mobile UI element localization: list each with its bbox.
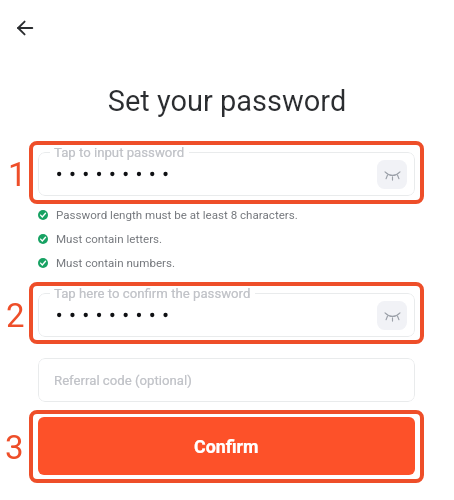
button[interactable]: Referral code (optional) [38, 358, 415, 402]
staticText: Password length must be at least 8 chara… [56, 208, 298, 222]
staticText: Tap here to confirm the password [54, 286, 251, 301]
button[interactable]: Must contain numbers. [38, 254, 158, 272]
button[interactable]: Show password [377, 301, 407, 330]
staticText: Confirm [194, 436, 259, 457]
staticText: 1 [8, 155, 27, 191]
button[interactable]: Password length must be at least 8 chara… [38, 206, 280, 224]
staticText: Tap to input password [54, 145, 185, 160]
button[interactable]: Confirm [38, 417, 415, 475]
button[interactable] [38, 293, 415, 337]
staticText: 3 [5, 428, 24, 464]
staticText: 2 [6, 296, 25, 332]
button[interactable] [38, 152, 415, 196]
button[interactable]: Must contain letters. [38, 230, 145, 248]
button[interactable]: Back [5, 8, 45, 48]
staticText: Must contain letters. [56, 232, 163, 246]
staticText: Referral code (optional) [54, 373, 192, 388]
button[interactable]: Show password [377, 160, 407, 189]
staticText: Set your password [0, 84, 454, 118]
staticText: Must contain numbers. [56, 256, 176, 270]
